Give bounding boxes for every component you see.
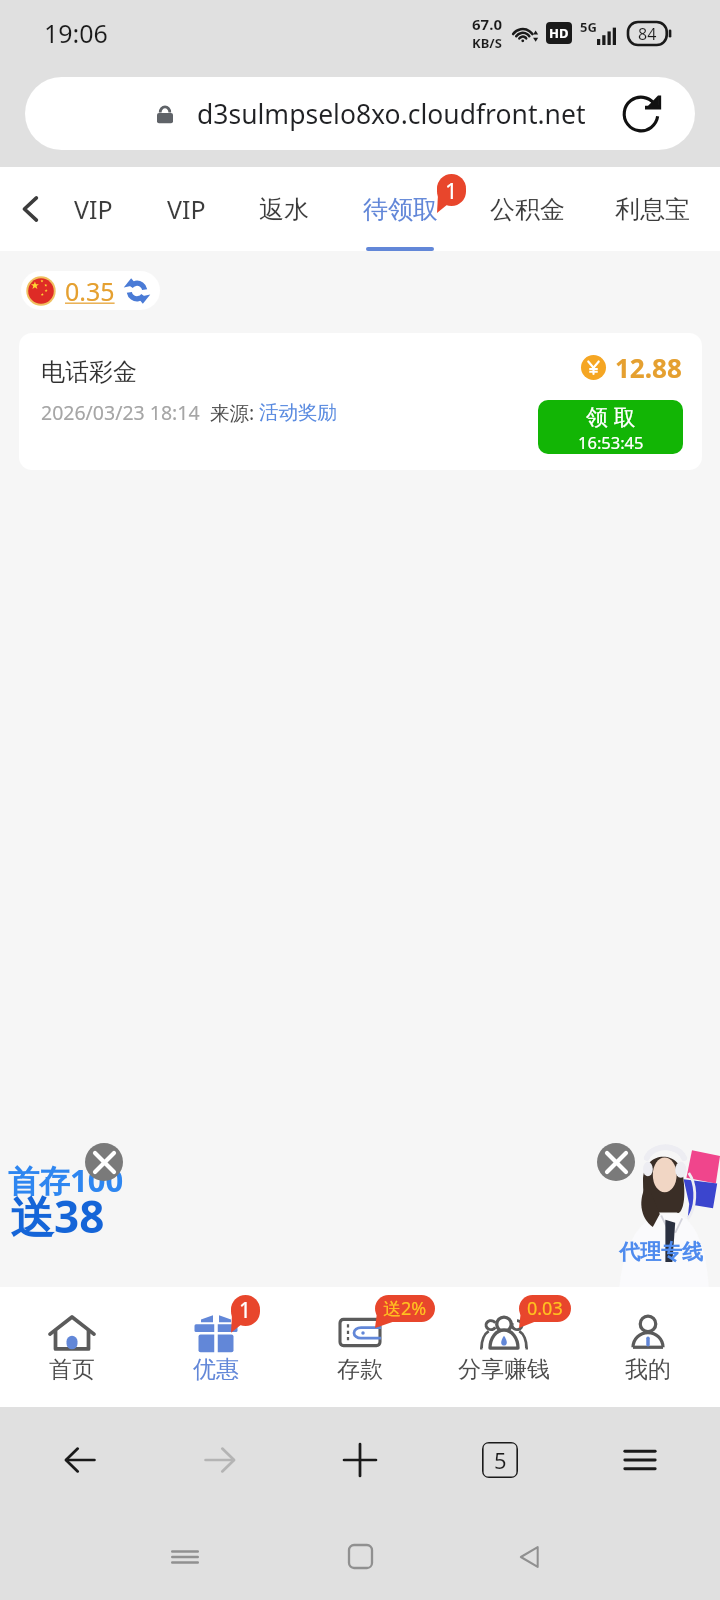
button[interactable]: Home [310, 1513, 410, 1600]
button[interactable]: Back [480, 1513, 580, 1600]
staticText: 我的 [625, 1355, 671, 1384]
staticText: 首存100 [8, 1159, 124, 1201]
staticText: 分享赚钱 [458, 1355, 550, 1384]
staticText: 5G [580, 18, 597, 36]
button[interactable]: 存款 [288, 1287, 432, 1407]
button[interactable]: 返水 [228, 167, 340, 251]
button[interactable]: 领 取 [538, 400, 683, 454]
staticText: 67.0 [472, 14, 502, 34]
button[interactable]: Close promotion [85, 1143, 123, 1181]
button[interactable]: VIP [140, 167, 232, 251]
button[interactable]: Back [10, 1407, 150, 1513]
staticText: 来源: [210, 399, 255, 426]
staticText: 19:06 [44, 16, 108, 50]
button[interactable]: Back [4, 182, 58, 236]
staticText: 16:53:45 [578, 431, 644, 453]
staticText: 领 取 [586, 401, 636, 431]
button[interactable]: 0.35 [21, 271, 160, 310]
staticText: 返水 [259, 194, 309, 225]
button[interactable]: 利息宝 [596, 167, 708, 251]
button[interactable]: 我的 [576, 1287, 720, 1407]
button[interactable]: d3sulmpselo8xo.cloudfront.net [25, 77, 695, 150]
staticText: 84 [638, 23, 657, 45]
staticText: 首页 [49, 1355, 95, 1384]
button[interactable]: 待领取 [344, 167, 456, 251]
button[interactable]: New tab [290, 1407, 430, 1513]
staticText: 1 [239, 1296, 252, 1325]
button[interactable]: Forward [150, 1407, 290, 1513]
staticText: 0.03 [527, 1296, 563, 1321]
staticText: HD [549, 24, 569, 42]
staticText: VIP [74, 192, 113, 226]
staticText: 活动奖励 [259, 400, 337, 425]
button[interactable]: 电话彩金 [19, 333, 702, 470]
button[interactable]: 优惠 [144, 1287, 288, 1407]
staticText: 1 [445, 175, 458, 205]
button[interactable]: Menu [570, 1407, 710, 1513]
staticText: 优惠 [193, 1355, 239, 1384]
button[interactable]: Close promotion [597, 1143, 635, 1181]
staticText: 送2% [383, 1296, 427, 1321]
staticText: 5 [494, 1445, 507, 1475]
staticText: 代理专线 [619, 1239, 703, 1265]
staticText: 待领取 [363, 194, 438, 225]
button[interactable]: Tabs [430, 1407, 570, 1513]
button[interactable]: 分享赚钱 [432, 1287, 576, 1407]
button[interactable]: Reload [621, 94, 661, 134]
button[interactable]: Recents [135, 1513, 235, 1600]
button[interactable]: 公积金 [471, 167, 583, 251]
button[interactable]: VIP [47, 167, 139, 251]
staticText: VIP [167, 192, 206, 226]
button[interactable]: 首页 [0, 1287, 144, 1407]
staticText: 2026/03/23 18:14 [41, 399, 200, 426]
staticText: 送38 [10, 1186, 105, 1246]
staticText: 利息宝 [615, 194, 690, 225]
staticText: 12.88 [615, 350, 682, 385]
staticText: KB/S [472, 34, 502, 52]
staticText: d3sulmpselo8xo.cloudfront.net [197, 96, 586, 132]
staticText: 0.35 [65, 274, 115, 308]
staticText: 存款 [337, 1355, 383, 1384]
staticText: 公积金 [490, 194, 565, 225]
staticText: 电话彩金 [41, 357, 137, 387]
